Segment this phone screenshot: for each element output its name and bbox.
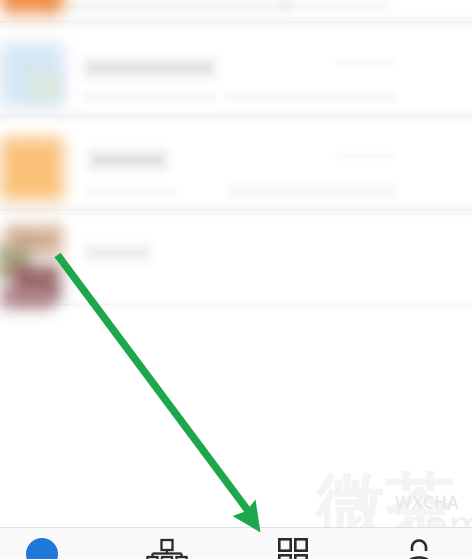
button[interactable]: Contacts [147,538,187,559]
button[interactable]: Discover [278,538,308,559]
button[interactable]: Me [402,538,436,559]
button[interactable]: Chats [26,538,58,559]
staticText: Baidu [339,523,445,559]
staticText: WXCHA [395,490,459,513]
staticText: 微茶 [315,465,453,551]
staticText: .com [394,497,472,549]
